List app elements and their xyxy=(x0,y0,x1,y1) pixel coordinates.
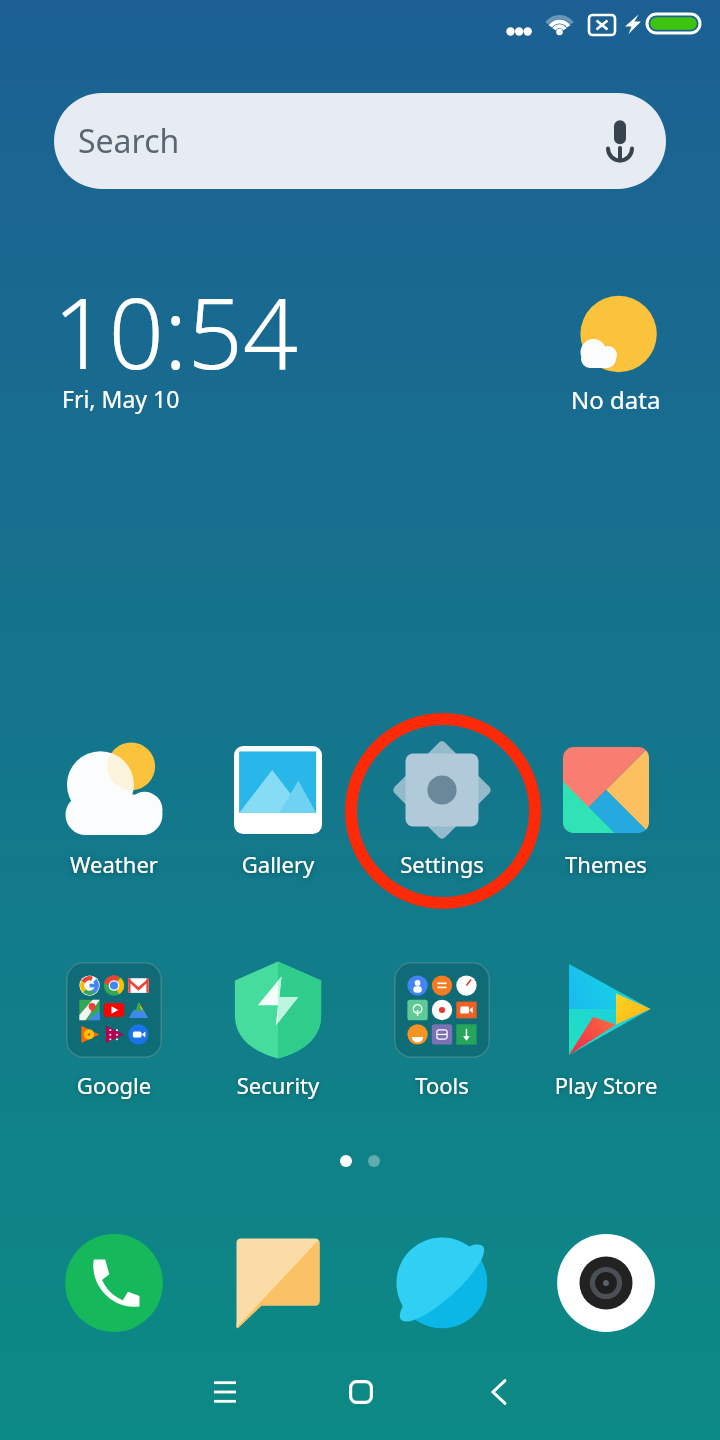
staticText: Settings xyxy=(362,849,522,879)
button[interactable]: Home xyxy=(327,1358,395,1426)
staticText: Gallery xyxy=(198,849,358,879)
button[interactable]: Play Store xyxy=(526,958,686,1102)
button[interactable]: Google xyxy=(34,958,194,1102)
staticText: Themes xyxy=(526,849,686,879)
button[interactable]: Messaging xyxy=(226,1231,330,1335)
button[interactable]: Back xyxy=(465,1358,533,1426)
staticText: Weather xyxy=(34,849,194,879)
button[interactable]: Themes xyxy=(526,738,686,881)
button[interactable]: Recent apps xyxy=(191,1358,259,1426)
button[interactable]: Weather xyxy=(34,738,194,881)
button[interactable]: Tools xyxy=(362,958,522,1102)
staticText: Fri, May 10 xyxy=(62,383,180,414)
staticText: Security xyxy=(198,1070,358,1100)
staticText: Search xyxy=(78,119,180,163)
button[interactable]: Gallery xyxy=(198,738,358,881)
button[interactable]: Search xyxy=(54,93,666,189)
button[interactable]: Settings xyxy=(362,738,522,881)
staticText: 10:54 xyxy=(53,265,299,397)
button[interactable]: Voice search xyxy=(592,113,648,169)
staticText: Tools xyxy=(362,1070,522,1100)
button[interactable]: Camera xyxy=(554,1231,658,1335)
button[interactable]: Security xyxy=(198,958,358,1102)
button[interactable]: Browser xyxy=(390,1231,494,1335)
staticText: Play Store xyxy=(526,1070,686,1100)
staticText: No data xyxy=(571,383,661,416)
button[interactable]: Phone xyxy=(62,1231,166,1335)
staticText: Google xyxy=(34,1070,194,1100)
